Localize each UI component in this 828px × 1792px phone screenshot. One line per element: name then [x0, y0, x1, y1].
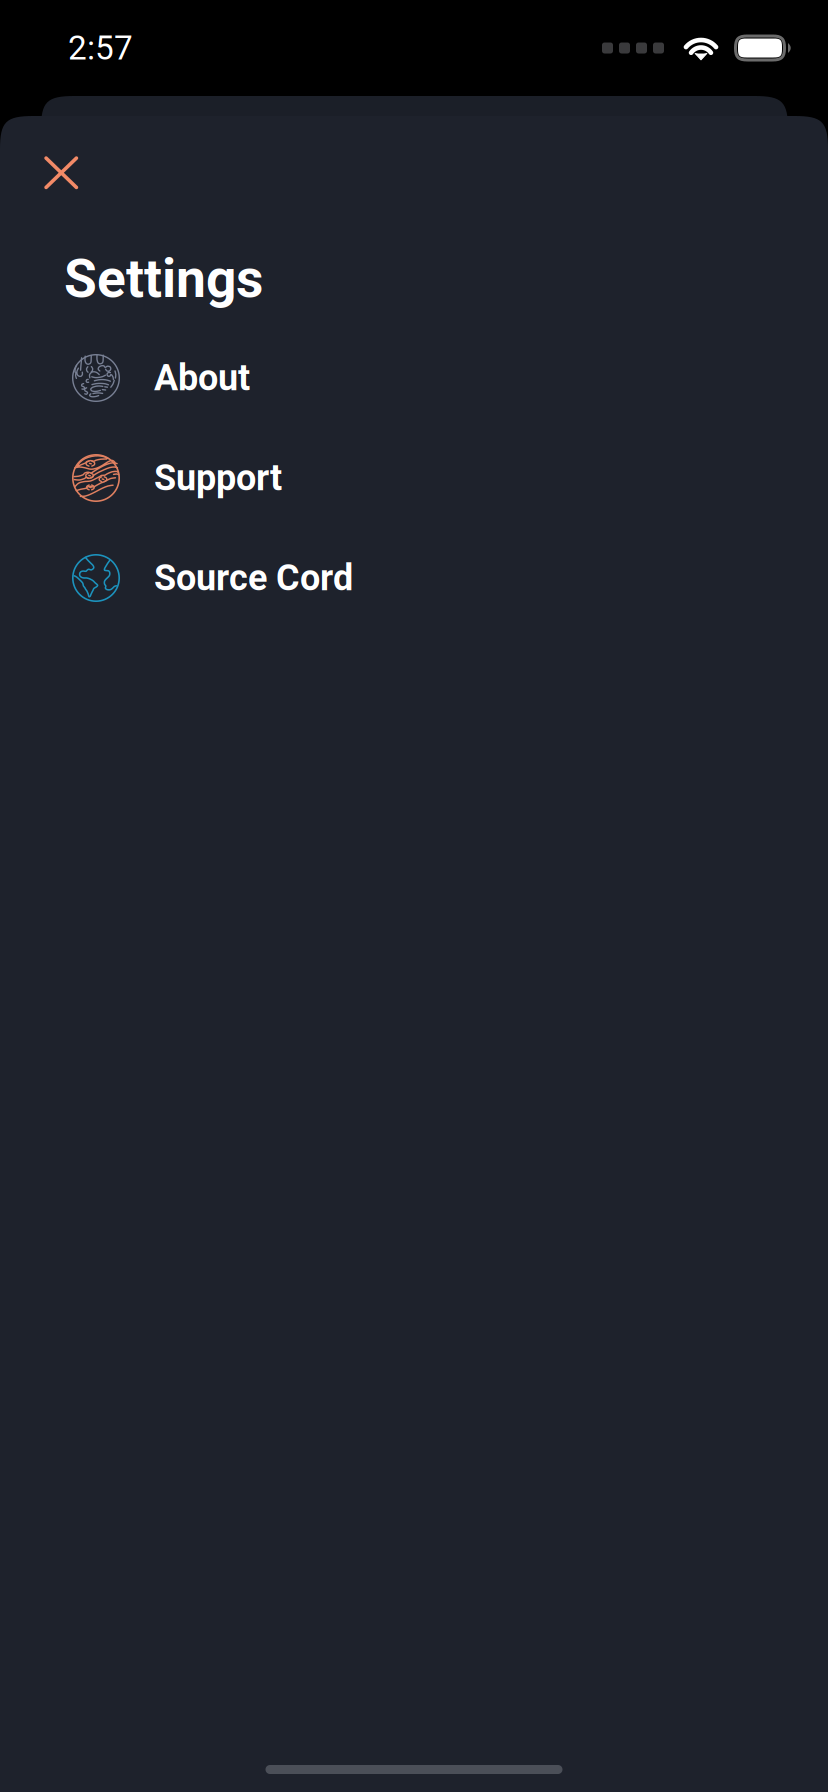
staticText: About	[154, 357, 250, 399]
staticText: Source Cord	[154, 557, 353, 599]
button[interactable]: Support	[0, 428, 828, 528]
button[interactable]: Close	[0, 116, 104, 211]
staticText: Support	[154, 457, 282, 499]
button[interactable]: About	[0, 328, 828, 428]
staticText: 2:57	[68, 28, 133, 68]
button[interactable]: Source Cord	[0, 528, 828, 628]
staticText: Settings	[64, 247, 263, 310]
